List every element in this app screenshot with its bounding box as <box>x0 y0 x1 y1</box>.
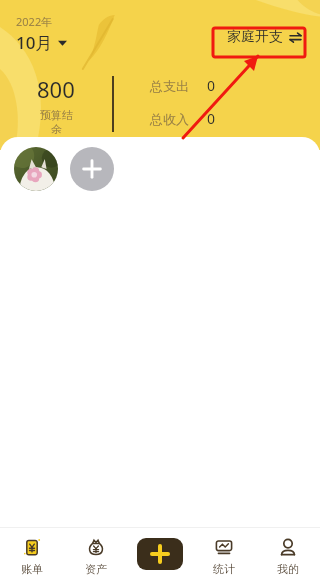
staticText: 统计 <box>213 562 235 576</box>
staticText: 总收入 <box>150 111 189 127</box>
staticText: 余 <box>51 122 62 136</box>
button[interactable]: 添加成员 <box>70 147 114 191</box>
staticText: 资产 <box>85 562 107 576</box>
button[interactable]: 统计 <box>192 527 256 587</box>
staticText: 0 <box>207 109 216 128</box>
staticText: 2022年 <box>16 14 53 29</box>
staticText: 预算结 <box>40 108 73 122</box>
button[interactable]: 账单 <box>0 527 64 587</box>
button[interactable]: 记一笔 <box>137 538 183 570</box>
button[interactable]: 用户头像 <box>14 147 58 191</box>
staticText: 800 <box>37 74 75 104</box>
button[interactable]: 家庭开支 <box>227 28 302 46</box>
button[interactable]: 资产 <box>64 527 128 587</box>
staticText: 账单 <box>21 562 43 576</box>
staticText: 0 <box>207 76 216 95</box>
button[interactable]: 10月 <box>16 31 67 54</box>
staticText: 家庭开支 <box>227 28 283 46</box>
button[interactable]: 我的 <box>256 527 320 587</box>
staticText: 总支出 <box>150 78 189 94</box>
staticText: 10月 <box>16 31 53 54</box>
staticText: 我的 <box>277 562 299 576</box>
